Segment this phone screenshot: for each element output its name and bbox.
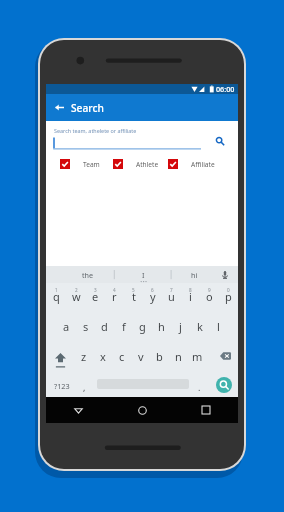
button[interactable]: Team xyxy=(57,157,100,171)
button[interactable]: Home xyxy=(110,397,174,423)
staticText: g xyxy=(139,319,146,334)
button[interactable]: c xyxy=(112,341,131,370)
staticText: w xyxy=(72,289,81,304)
button[interactable]: I xyxy=(130,266,156,283)
button[interactable]: Athlete xyxy=(110,157,159,171)
button[interactable]: , xyxy=(76,370,93,397)
staticText: 3 xyxy=(94,287,97,293)
staticText: 6 xyxy=(151,287,154,293)
staticText: c xyxy=(119,349,125,364)
staticText: j xyxy=(179,319,182,334)
button[interactable]: l xyxy=(209,312,228,341)
button[interactable]: . xyxy=(191,370,208,397)
button[interactable]: 7 xyxy=(162,283,181,312)
button[interactable]: k xyxy=(190,312,209,341)
staticText: x xyxy=(100,349,106,364)
button[interactable]: Recents xyxy=(174,397,238,423)
button[interactable]: Voice input xyxy=(215,266,235,283)
staticText: m xyxy=(192,349,203,364)
button[interactable]: 5 xyxy=(124,283,143,312)
staticText: f xyxy=(122,319,126,334)
button[interactable]: 2 xyxy=(66,283,86,312)
staticText: 4 xyxy=(113,287,116,293)
staticText: a xyxy=(63,319,70,334)
button[interactable]: h xyxy=(152,312,171,341)
staticText: h xyxy=(158,319,165,334)
staticText: 8 xyxy=(189,287,192,293)
staticText: the xyxy=(82,270,94,280)
staticText: s xyxy=(83,319,89,334)
staticText: Search xyxy=(71,101,104,115)
staticText: Athlete xyxy=(136,160,159,169)
button[interactable]: ?123 xyxy=(46,370,77,397)
button[interactable]: j xyxy=(171,312,190,341)
button[interactable]: 0 xyxy=(219,283,238,312)
button[interactable]: 4 xyxy=(105,283,124,312)
button[interactable]: m xyxy=(188,341,207,370)
button[interactable]: 6 xyxy=(143,283,162,312)
button[interactable]: 8 xyxy=(181,283,200,312)
staticText: u xyxy=(168,289,175,304)
staticText: d xyxy=(101,319,108,334)
staticText: y xyxy=(150,289,156,304)
button[interactable]: Search xyxy=(216,377,232,393)
staticText: l xyxy=(217,319,220,334)
staticText: 1 xyxy=(55,287,58,293)
button[interactable]: 1 xyxy=(46,283,66,312)
staticText: Search team, athelete or affiliate xyxy=(54,127,137,134)
staticText: n xyxy=(175,349,182,364)
staticText: I xyxy=(142,270,145,280)
button[interactable]: the xyxy=(75,266,101,283)
staticText: 06:00 xyxy=(216,84,235,94)
button[interactable]: Backspace xyxy=(207,341,238,370)
staticText: Team xyxy=(83,160,100,169)
staticText: q xyxy=(53,289,60,304)
button[interactable]: Back xyxy=(46,397,110,423)
staticText: t xyxy=(132,289,136,304)
button[interactable]: d xyxy=(95,312,114,341)
staticText: ?123 xyxy=(54,381,70,391)
button[interactable]: 3 xyxy=(86,283,105,312)
staticText: 5 xyxy=(132,287,135,293)
staticText: i xyxy=(189,289,192,304)
button[interactable]: g xyxy=(133,312,152,341)
staticText: k xyxy=(197,319,203,334)
button[interactable]: 9 xyxy=(200,283,219,312)
button[interactable]: Back xyxy=(50,94,68,121)
button[interactable]: n xyxy=(169,341,188,370)
button[interactable]: b xyxy=(150,341,169,370)
staticText: r xyxy=(112,289,117,304)
staticText: 0 xyxy=(227,287,230,293)
button[interactable]: a xyxy=(56,312,76,341)
button[interactable]: hi xyxy=(181,266,207,283)
button[interactable]: Affiliate xyxy=(165,157,215,171)
staticText: b xyxy=(156,349,163,364)
button[interactable]: Search xyxy=(210,131,228,149)
staticText: Affiliate xyxy=(191,160,215,169)
button[interactable]: Shift xyxy=(46,341,74,370)
staticText: . xyxy=(198,381,201,393)
button[interactable]: v xyxy=(131,341,150,370)
staticText: hi xyxy=(191,270,198,280)
staticText: , xyxy=(83,381,86,393)
staticText: e xyxy=(92,289,99,304)
staticText: 7 xyxy=(170,287,173,293)
button[interactable]: s xyxy=(76,312,95,341)
button[interactable]: z xyxy=(74,341,93,370)
staticText: 9 xyxy=(208,287,211,293)
staticText: v xyxy=(138,349,144,364)
button[interactable]: f xyxy=(114,312,133,341)
staticText: p xyxy=(225,289,232,304)
staticText: 2 xyxy=(75,287,78,293)
button[interactable]: x xyxy=(93,341,112,370)
staticText: z xyxy=(81,349,87,364)
staticText: o xyxy=(206,289,213,304)
